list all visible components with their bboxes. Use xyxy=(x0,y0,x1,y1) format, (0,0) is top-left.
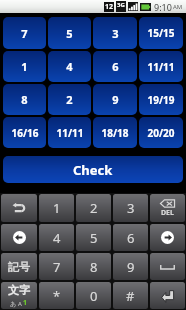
staticText: 4 xyxy=(53,229,61,247)
button[interactable]: 9 xyxy=(93,84,137,115)
button[interactable]: # xyxy=(113,282,148,309)
staticText: 11/11 xyxy=(147,60,175,74)
staticText: 8 xyxy=(21,92,28,107)
button[interactable]: 20/20 xyxy=(139,117,183,148)
staticText: あ xyxy=(10,300,17,308)
button[interactable]: 15/15 xyxy=(139,17,183,49)
button[interactable]: Symbols xyxy=(1,253,37,280)
staticText: 1 xyxy=(21,59,28,74)
button[interactable]: 2 xyxy=(76,194,111,222)
staticText: 16/16 xyxy=(11,126,39,140)
button[interactable]: 3 xyxy=(93,17,137,49)
staticText: 3 xyxy=(127,199,135,217)
staticText: 4 xyxy=(66,59,73,74)
staticText: 2 xyxy=(66,92,73,107)
button[interactable]: Enter xyxy=(150,282,185,309)
staticText: 7 xyxy=(21,26,28,41)
button[interactable]: 6 xyxy=(113,224,148,251)
staticText: 5 xyxy=(66,26,73,41)
staticText: AM xyxy=(173,3,183,11)
staticText: 11/11 xyxy=(56,126,84,140)
button[interactable]: 6 xyxy=(93,51,137,82)
button[interactable]: 11/11 xyxy=(139,51,183,82)
button[interactable]: * xyxy=(39,282,74,309)
button[interactable]: 9 xyxy=(113,253,148,280)
staticText: 文字 xyxy=(8,283,30,297)
button[interactable]: 1 xyxy=(39,194,74,222)
staticText: 記号 xyxy=(8,260,30,274)
button[interactable]: Undo xyxy=(1,194,37,222)
staticText: 8 xyxy=(90,258,98,276)
staticText: 1 xyxy=(53,199,61,217)
button[interactable]: 3 xyxy=(113,194,148,222)
button[interactable]: 4 xyxy=(48,51,91,82)
button[interactable]: Switch input mode xyxy=(1,282,37,309)
button[interactable]: 7 xyxy=(39,253,74,280)
staticText: 12 xyxy=(105,2,114,12)
staticText: DEL xyxy=(161,208,174,218)
staticText: 9:10 xyxy=(154,1,172,13)
staticText: 9 xyxy=(112,92,119,107)
staticText: A xyxy=(18,300,22,308)
staticText: 19/19 xyxy=(147,93,175,107)
button[interactable]: Delete xyxy=(150,194,185,222)
staticText: 2 xyxy=(90,199,98,217)
staticText: 1 xyxy=(23,298,28,308)
button[interactable]: 5 xyxy=(48,17,91,49)
staticText: 5 xyxy=(90,229,98,247)
button[interactable]: 4 xyxy=(39,224,74,251)
staticText: 9 xyxy=(127,258,135,276)
staticText: 6 xyxy=(112,59,119,74)
button[interactable]: 8 xyxy=(3,84,46,115)
staticText: 15/15 xyxy=(147,26,175,40)
staticText: 3G xyxy=(117,1,125,8)
staticText: 20/20 xyxy=(147,126,175,140)
button[interactable]: 18/18 xyxy=(93,117,137,148)
button[interactable]: Move left xyxy=(1,224,37,251)
button[interactable]: Space xyxy=(150,253,185,280)
button[interactable]: Check xyxy=(3,156,183,183)
button[interactable]: 19/19 xyxy=(139,84,183,115)
staticText: 0 xyxy=(90,287,98,305)
button[interactable]: 5 xyxy=(76,224,111,251)
button[interactable]: 8 xyxy=(76,253,111,280)
button[interactable]: 7 xyxy=(3,17,46,49)
staticText: 6 xyxy=(127,229,135,247)
button[interactable]: 0 xyxy=(76,282,111,309)
button[interactable]: 1 xyxy=(3,51,46,82)
button[interactable]: Move right xyxy=(150,224,185,251)
staticText: Check xyxy=(73,161,113,179)
staticText: # xyxy=(126,287,135,305)
button[interactable]: 11/11 xyxy=(48,117,91,148)
staticText: * xyxy=(53,287,61,305)
staticText: 3 xyxy=(112,26,119,41)
staticText: 18/18 xyxy=(101,126,129,140)
button[interactable]: 16/16 xyxy=(3,117,46,148)
button[interactable]: 2 xyxy=(48,84,91,115)
staticText: 7 xyxy=(53,258,61,276)
